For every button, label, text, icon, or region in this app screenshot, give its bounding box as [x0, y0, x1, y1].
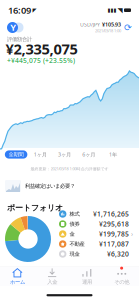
staticText: +¥445,075 (+23.55%) — [7, 56, 75, 65]
button[interactable]: Account — [7, 22, 25, 33]
staticText: 1ヶ月 — [34, 151, 47, 158]
button[interactable]: ホーム — [0, 266, 35, 286]
staticText: ▮▮▮ — [107, 7, 116, 13]
staticText: 入金 — [47, 279, 57, 285]
staticText: ¥295,618 — [99, 220, 129, 228]
staticText: 株式 — [69, 211, 79, 217]
staticText: ⟳ — [124, 22, 132, 32]
button[interactable]: 債券 — [59, 219, 135, 229]
staticText: 金 — [69, 231, 74, 237]
button[interactable]: 現金 — [59, 249, 135, 259]
button[interactable]: 1ヶ月 — [28, 150, 52, 159]
staticText: ホーム — [10, 279, 25, 285]
staticText: ◤ — [32, 7, 36, 13]
button[interactable]: 3ヶ月 — [52, 150, 77, 159]
staticText: 全期間 — [9, 151, 24, 158]
staticText: ¥199,785 — [99, 230, 129, 238]
staticText: ポートフォリオ — [7, 203, 63, 213]
staticText: 6ヶ月 — [82, 151, 95, 158]
staticText: ¥2,335,075 — [5, 39, 77, 58]
button[interactable]: 利益確定はいま必要？ — [0, 178, 139, 194]
staticText: USD/JPY — [80, 21, 100, 28]
staticText: Y — [10, 21, 16, 33]
button[interactable]: 入金 — [35, 266, 70, 286]
staticText: 16:09 — [8, 4, 31, 16]
staticText: ¥1,716,265 — [93, 210, 129, 218]
staticText: 1年 — [109, 151, 117, 158]
staticText: 3ヶ月 — [58, 151, 71, 158]
button[interactable]: Refresh — [123, 22, 133, 33]
staticText: 現金 — [69, 251, 79, 257]
button[interactable]: 全期間 — [4, 150, 28, 159]
staticText: ◥ — [117, 6, 122, 14]
staticText: 運用 — [82, 279, 92, 285]
button[interactable]: 6ヶ月 — [77, 150, 101, 159]
staticText: › — [131, 230, 133, 238]
button[interactable]: 株式 — [59, 209, 135, 219]
staticText: 最終更新：2021/03/18 1:00時点の評価額です — [30, 166, 108, 171]
staticText: 債券 — [69, 221, 79, 227]
button[interactable]: その他 — [104, 266, 139, 286]
staticText: その他 — [114, 279, 129, 285]
staticText: 評価額合計 — [7, 36, 32, 43]
staticText: 不動産 — [69, 241, 84, 247]
button[interactable]: 金 — [59, 229, 135, 239]
button[interactable]: 1年 — [101, 150, 125, 159]
staticText: 2021/03/18 1:00 — [95, 28, 121, 33]
button[interactable]: 運用 — [69, 266, 104, 286]
staticText: ¥105.93 — [102, 21, 121, 28]
staticText: 利益確定はいま必要？ — [25, 183, 75, 189]
staticText: ¥6,320 — [107, 250, 129, 258]
staticText: ¥117,087 — [99, 240, 129, 248]
button[interactable]: 不動産 — [59, 239, 135, 249]
